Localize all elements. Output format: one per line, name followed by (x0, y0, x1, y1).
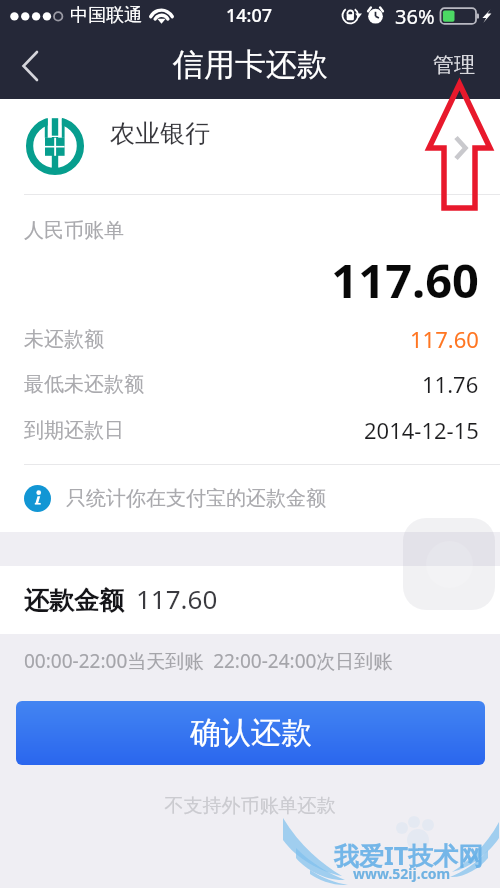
staticText: 只统计你在支付宝的还款金额 (66, 486, 326, 511)
staticText: 人民币账单 (24, 218, 124, 243)
staticText: 到期还款日 (24, 418, 124, 443)
staticText: 117.60 (136, 581, 218, 616)
staticText: www.52ij.com (353, 864, 451, 883)
staticText: 117.60 (410, 324, 479, 354)
staticText: 信用卡还款 (173, 45, 328, 84)
staticText: 还款金额 (24, 585, 124, 616)
staticText: 不支持外币账单还款 (0, 794, 500, 818)
staticText: 117.60 (0, 248, 479, 312)
staticText: 14:07 (226, 3, 273, 28)
staticText: 管理 (433, 52, 475, 78)
staticText: 农业银行 (110, 118, 210, 149)
staticText: 未还款额 (24, 327, 104, 352)
staticText: 00:00-22:00当天到账 22:00-24:00次日到账 (24, 648, 393, 674)
staticText: 最低未还款额 (24, 372, 144, 397)
staticText: 中国联通 (70, 4, 142, 27)
staticText: 我爱IT技术网 (334, 838, 484, 872)
staticText: 2014-12-15 (364, 415, 479, 445)
staticText: 确认还款 (190, 714, 312, 752)
button[interactable]: 管理 (411, 32, 500, 99)
staticText: 11.76 (422, 369, 479, 399)
button[interactable]: AssistiveTouch (403, 518, 495, 610)
staticText: 36% (395, 3, 435, 30)
button[interactable]: 农业银行 (0, 99, 500, 195)
button[interactable]: 确认还款 (16, 701, 485, 765)
button[interactable]: Back (0, 32, 58, 99)
